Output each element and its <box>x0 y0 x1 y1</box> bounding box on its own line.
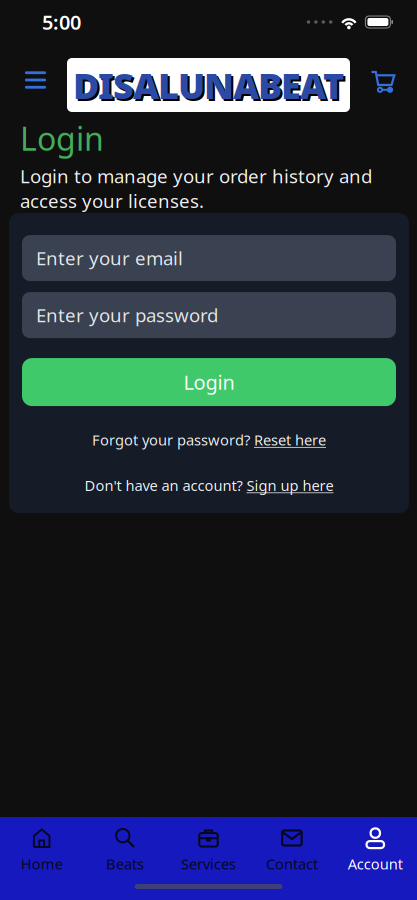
staticText: Enter your password <box>36 303 218 327</box>
staticText: DISALUNABEAT <box>73 61 344 109</box>
staticText: Services <box>181 854 236 873</box>
staticText: Account <box>348 854 403 873</box>
staticText: 5:00 <box>42 9 81 35</box>
staticText: Login to manage your order history and a… <box>20 163 372 213</box>
staticText: DISALUNABEAT <box>75 63 346 111</box>
button[interactable]: Services <box>167 826 250 873</box>
button[interactable]: Don't have an account? Sign up here <box>84 476 333 495</box>
button[interactable]: Menu <box>0 64 46 82</box>
staticText: Login <box>183 369 234 395</box>
staticText: Beats <box>106 854 144 873</box>
button[interactable]: Beats <box>83 826 167 873</box>
staticText: Forgot your password? Reset here <box>92 430 326 450</box>
button[interactable]: Cart <box>371 61 417 84</box>
button[interactable]: Enter your password <box>22 292 396 338</box>
staticText: Don't have an account? Sign up here <box>84 476 333 495</box>
staticText: Login <box>20 117 104 159</box>
button[interactable]: Enter your email <box>22 235 396 281</box>
button[interactable]: Home <box>0 826 83 873</box>
button[interactable]: Login <box>22 358 396 406</box>
button[interactable]: Forgot your password? Reset here <box>92 430 326 450</box>
staticText: Contact <box>266 854 318 873</box>
button[interactable]: Contact <box>250 826 334 873</box>
staticText: Home <box>21 854 63 873</box>
button[interactable]: DisalunaBeat home <box>67 46 350 100</box>
staticText: Enter your email <box>36 246 183 270</box>
button[interactable]: Account <box>334 826 417 873</box>
